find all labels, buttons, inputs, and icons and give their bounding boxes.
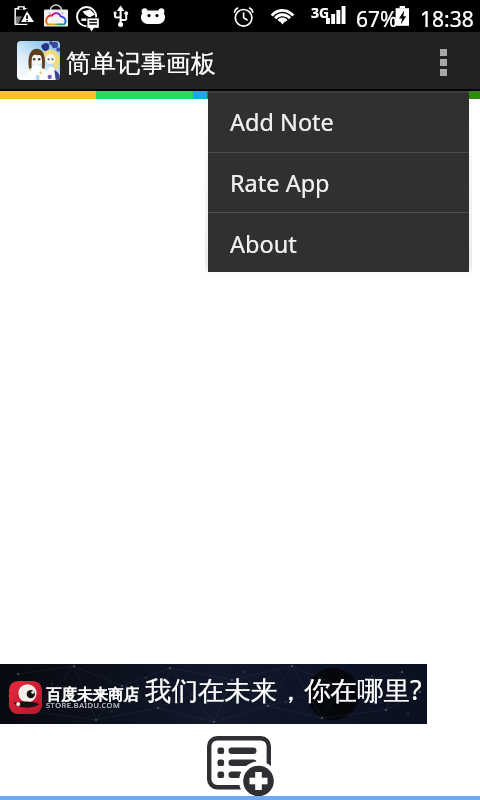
staticText: 67% [356,5,398,34]
button[interactable]: More options [423,32,480,89]
button[interactable]: 百度未来商店 [0,664,427,724]
button[interactable]: About [208,213,469,272]
staticText: About [230,228,297,260]
button[interactable]: Rate App [208,153,469,212]
button[interactable]: Add note [204,731,274,800]
staticText: 百度未来商店 [46,685,139,705]
staticText: Add Note [230,106,334,138]
button[interactable]: Add Note [208,93,469,152]
staticText: Rate App [230,167,330,199]
staticText: 3G [311,3,330,22]
staticText: STORE.BAIDU.COM [46,700,121,710]
staticText: 我们在未来，你在哪里? [145,672,422,708]
staticText: 18:38 [420,5,474,34]
staticText: 简单记事画板 [66,48,216,79]
